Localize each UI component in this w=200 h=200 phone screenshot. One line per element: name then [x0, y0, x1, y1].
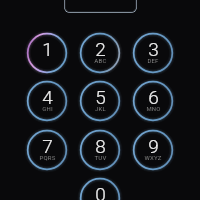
- staticText: ABC: [94, 57, 107, 64]
- button[interactable]: 5: [77, 78, 123, 124]
- staticText: DEF: [147, 57, 159, 64]
- staticText: PQRS: [39, 154, 56, 161]
- button[interactable]: 3: [130, 30, 176, 76]
- staticText: 5: [95, 86, 106, 108]
- staticText: 9: [148, 135, 159, 157]
- staticText: 2: [95, 38, 106, 60]
- button[interactable]: 9: [130, 127, 176, 173]
- staticText: 7: [42, 135, 53, 157]
- button[interactable]: 4: [24, 78, 70, 124]
- staticText: JKL: [95, 105, 106, 112]
- staticText: 6: [148, 86, 159, 108]
- staticText: 8: [95, 135, 106, 157]
- staticText: TUV: [94, 154, 107, 161]
- staticText: MNO: [146, 105, 161, 112]
- button[interactable]: 6: [130, 78, 176, 124]
- staticText: 0: [95, 183, 106, 200]
- button[interactable]: 8: [77, 127, 123, 173]
- button[interactable]: 0: [77, 175, 123, 200]
- staticText: 4: [42, 86, 53, 108]
- button[interactable]: 1: [24, 30, 70, 76]
- staticText: GHI: [42, 105, 53, 112]
- button[interactable]: 7: [24, 127, 70, 173]
- button[interactable]: 2: [77, 30, 123, 76]
- staticText: WXYZ: [144, 154, 162, 161]
- button[interactable]: Dialed number: [64, 0, 137, 13]
- staticText: 3: [148, 38, 159, 60]
- staticText: 1: [42, 38, 53, 60]
